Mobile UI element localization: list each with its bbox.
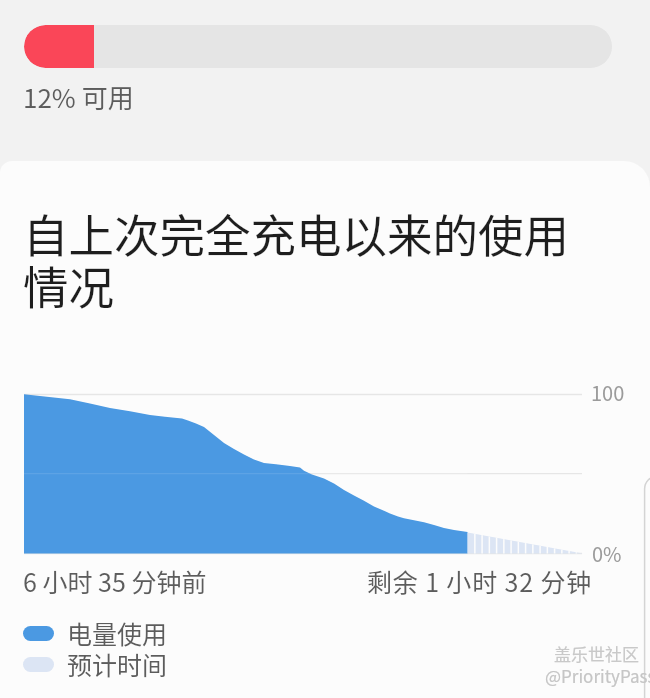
staticText: 预计时间: [67, 646, 168, 682]
staticText: 盖乐世社区: [554, 641, 639, 666]
staticText: 6 小时 35 分钟前: [23, 563, 207, 599]
button[interactable]: Battery level 12 percent: [24, 25, 612, 68]
staticText: 剩余 1 小时 32 分钟: [367, 563, 593, 599]
staticText: 电量使用: [67, 615, 168, 651]
staticText: 0%: [592, 539, 622, 568]
staticText: @PriorityPass: [545, 663, 650, 688]
staticText: 自上次完全充电以来的使用情况: [23, 200, 583, 318]
button[interactable]: 自上次完全充电以来的使用情况: [0, 161, 650, 698]
staticText: 12% 可用: [23, 78, 134, 116]
staticText: 100: [591, 378, 625, 407]
